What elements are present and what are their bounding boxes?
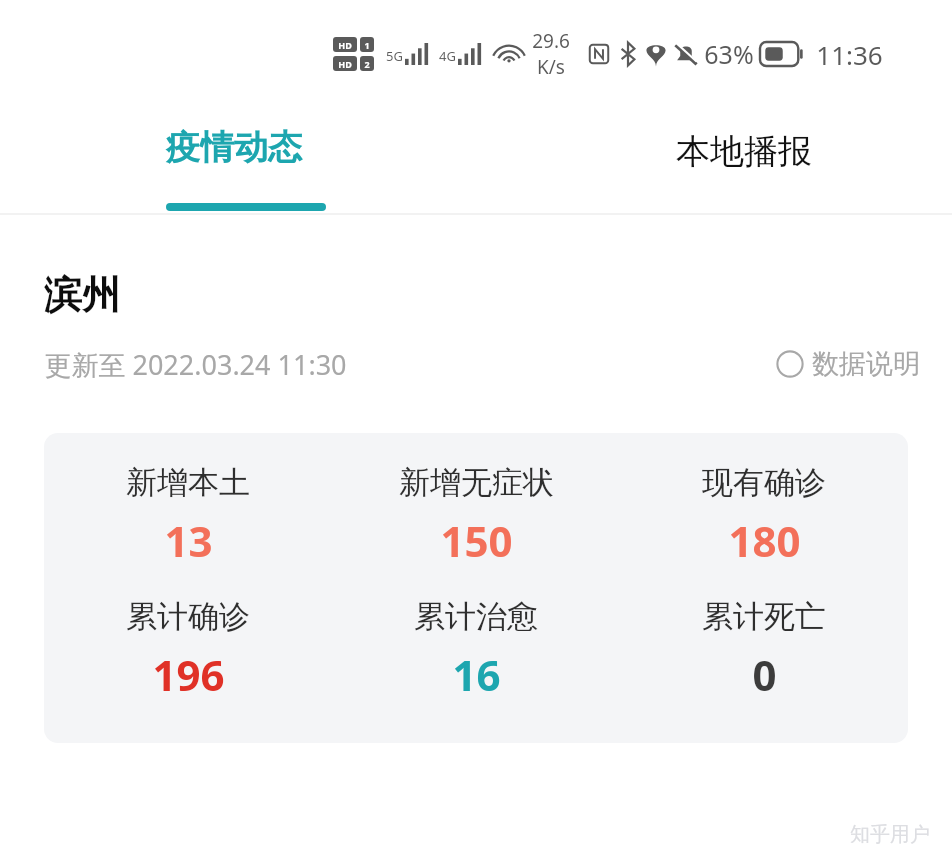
staticText: 29.6 xyxy=(532,28,570,54)
staticText: 数据说明 xyxy=(812,347,920,381)
staticText: 疫情动态 xyxy=(166,126,302,169)
staticText: 累计死亡 xyxy=(702,597,826,636)
staticText: 更新至 2022.03.24 11:30 xyxy=(44,346,347,383)
staticText: 13 xyxy=(164,512,213,569)
button[interactable]: 数据说明 xyxy=(770,341,926,387)
staticText: 现有确诊 xyxy=(702,463,826,502)
staticText: 知乎用户 xyxy=(850,822,930,847)
staticText: 11:36 xyxy=(816,37,883,72)
staticText: 累计治愈 xyxy=(414,597,538,636)
button[interactable]: 疫情动态 xyxy=(140,108,328,187)
staticText: K/s xyxy=(537,54,565,80)
button[interactable]: 新增本土 xyxy=(44,433,908,743)
staticText: 新增本土 xyxy=(126,463,250,502)
staticText: 180 xyxy=(728,512,801,569)
staticText: 滨州 xyxy=(44,271,120,319)
staticText: 本地播报 xyxy=(676,130,812,173)
staticText: 16 xyxy=(452,646,501,703)
staticText: HD xyxy=(338,39,352,51)
staticText: HD xyxy=(338,58,352,70)
staticText: 新增无症状 xyxy=(399,463,554,502)
staticText: 63% xyxy=(704,37,754,71)
staticText: 5G xyxy=(386,47,403,65)
staticText: 4G xyxy=(439,47,456,65)
staticText: 196 xyxy=(152,646,225,703)
staticText: 2 xyxy=(364,58,370,70)
staticText: 累计确诊 xyxy=(126,597,250,636)
staticText: 0 xyxy=(752,646,777,703)
button[interactable]: 本地播报 xyxy=(650,126,838,177)
staticText: 150 xyxy=(440,512,513,569)
staticText: 1 xyxy=(364,39,370,51)
